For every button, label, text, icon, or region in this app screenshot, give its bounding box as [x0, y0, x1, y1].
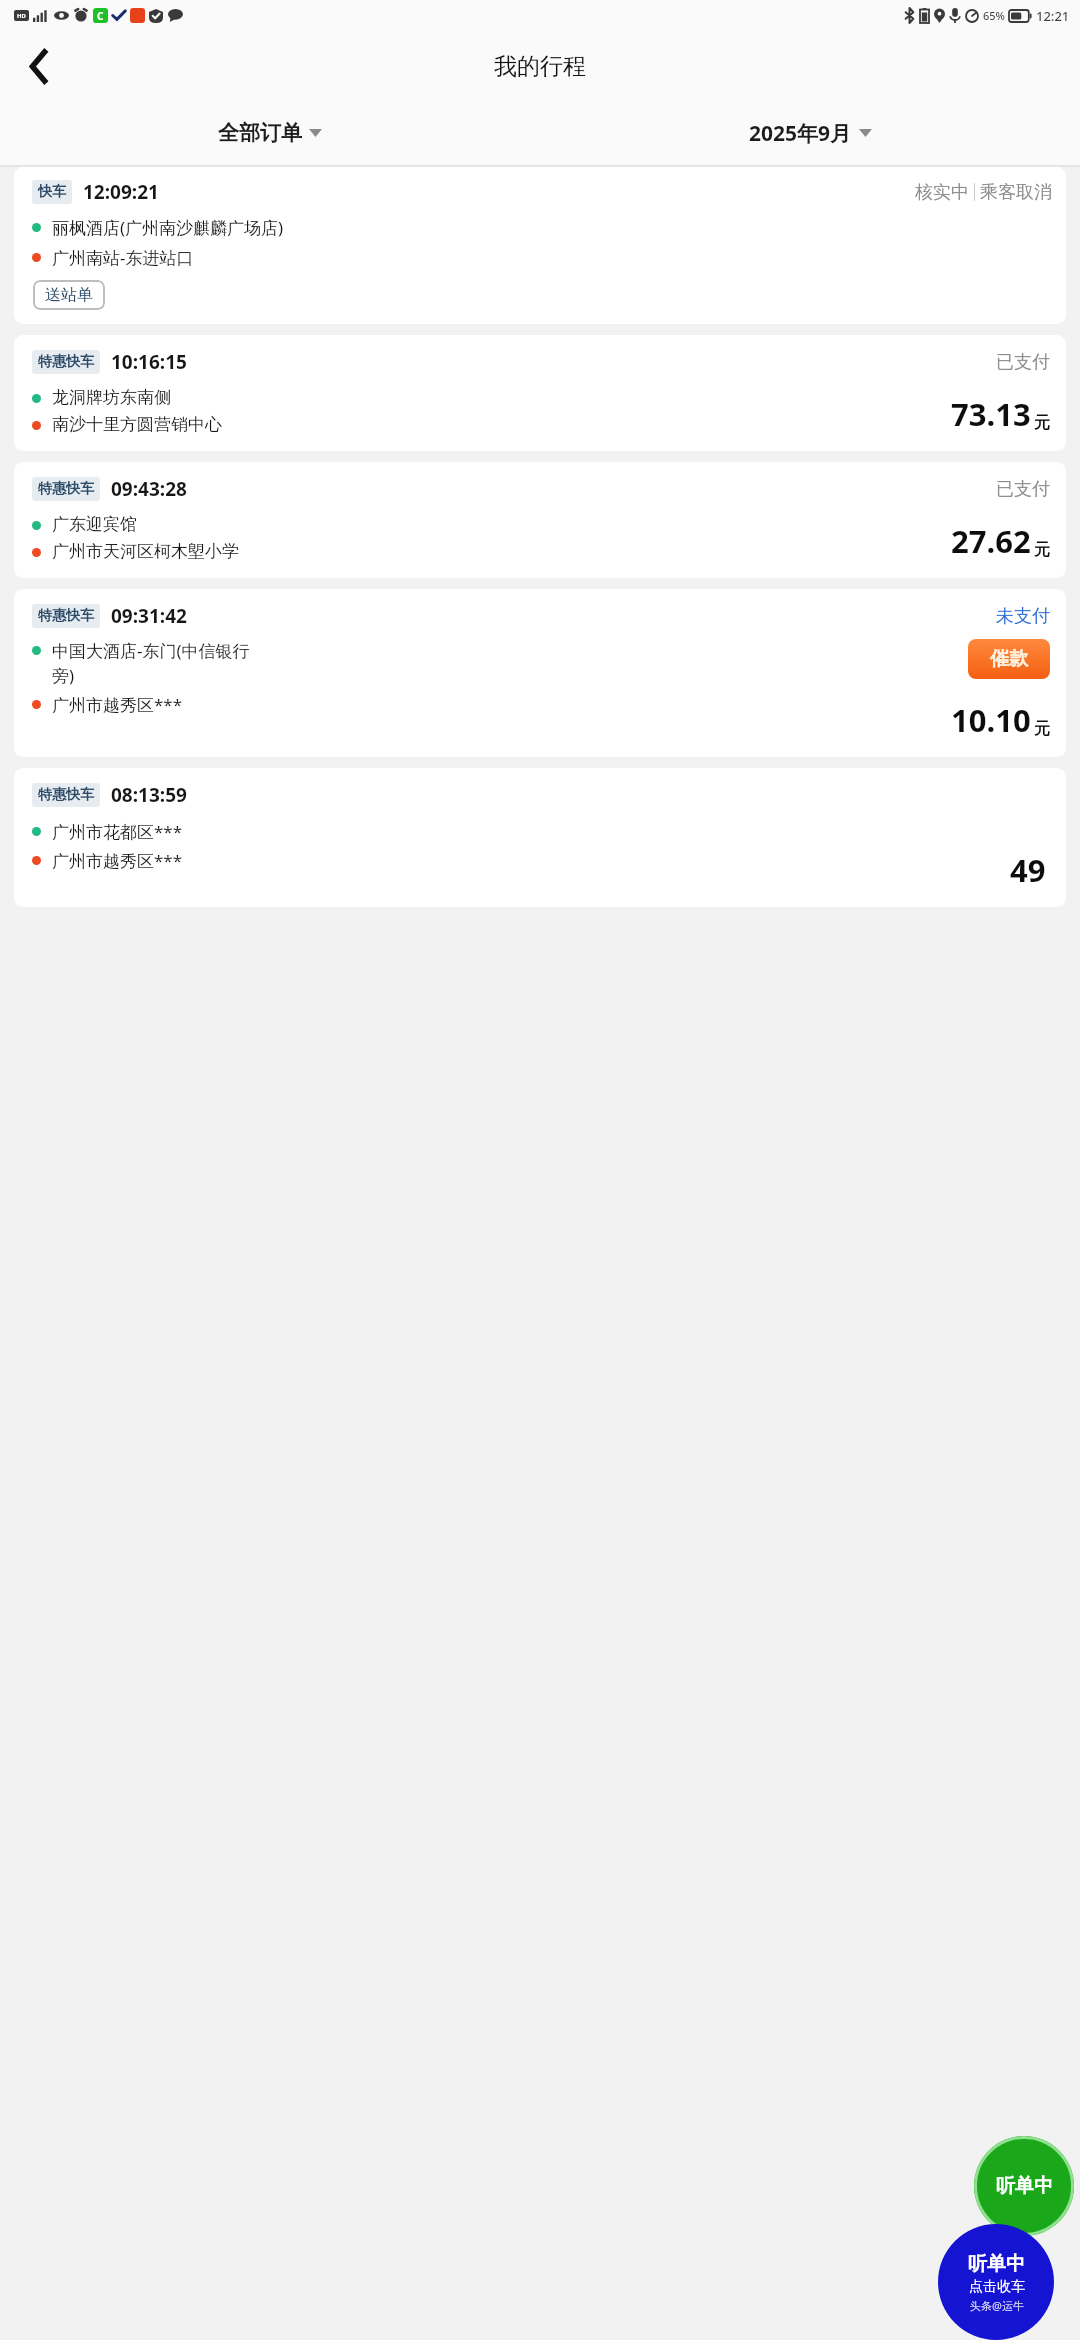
staticText: 核实中	[915, 181, 969, 204]
staticText: 10:16:15	[111, 349, 187, 375]
staticText: 广州市越秀区***	[52, 693, 183, 716]
staticText: HD	[17, 12, 26, 20]
staticText: 头条@运牛	[970, 2298, 1024, 2313]
staticText: 特惠快车	[38, 607, 94, 625]
staticText: C	[97, 9, 104, 23]
staticText: 未支付	[996, 605, 1050, 628]
staticText: 广州市越秀区***	[52, 849, 183, 872]
button[interactable]: 特惠快车	[14, 335, 1066, 451]
staticText: 快车	[38, 183, 66, 201]
staticText: 全部订单	[218, 120, 302, 146]
staticText: 特惠快车	[38, 353, 94, 371]
staticText: 南沙十里方圆营销中心	[52, 414, 222, 435]
staticText: 09:31:42	[111, 603, 187, 629]
staticText: 已支付	[996, 478, 1050, 501]
staticText: 49	[1010, 849, 1046, 891]
button[interactable]: 特惠快车	[14, 589, 1066, 757]
staticText: 特惠快车	[38, 786, 94, 804]
staticText: 2025年9月	[749, 119, 852, 148]
button[interactable]: 特惠快车	[14, 462, 1066, 578]
staticText: 我的行程	[494, 52, 586, 81]
button[interactable]: 全部订单	[0, 101, 540, 165]
staticText: 广州市花都区***	[52, 820, 183, 843]
staticText: 65%	[983, 8, 1005, 23]
staticText: 送站单	[45, 285, 93, 305]
staticText: 已支付	[996, 351, 1050, 374]
button[interactable]: 返回	[12, 40, 64, 92]
staticText: 丽枫酒店(广州南沙麒麟广场店)	[52, 216, 284, 239]
staticText: 12:21	[1036, 7, 1070, 25]
staticText: 听单中	[996, 2174, 1053, 2198]
staticText: 10.10	[951, 699, 1031, 741]
button[interactable]: 快车	[14, 167, 1066, 324]
staticText: 广州市天河区柯木塱小学	[52, 541, 239, 562]
staticText: 特惠快车	[38, 480, 94, 498]
staticText: 点击收车	[969, 2278, 1025, 2296]
staticText: 广州南站-东进站口	[52, 246, 194, 269]
button[interactable]: 听单中	[938, 2224, 1054, 2340]
staticText: 听单中	[968, 2252, 1025, 2276]
button[interactable]: 送站单	[33, 280, 105, 310]
staticText: 广东迎宾馆	[52, 514, 137, 535]
staticText: 27.62	[951, 520, 1031, 562]
staticText: 73.13	[951, 393, 1031, 435]
staticText: 龙洞牌坊东南侧	[52, 387, 171, 408]
staticText: 催款	[990, 647, 1028, 671]
button[interactable]: 听单中	[974, 2136, 1074, 2236]
staticText: 元	[1034, 540, 1050, 560]
staticText: 乘客取消	[980, 181, 1052, 204]
staticText: 09:43:28	[111, 476, 187, 502]
staticText: 中国大酒店-东门(中信银行 旁)	[52, 639, 250, 687]
staticText: 12:09:21	[83, 179, 159, 205]
staticText: 元	[1034, 413, 1050, 433]
button[interactable]: 催款	[968, 639, 1050, 679]
button[interactable]: 2025年9月	[540, 101, 1080, 165]
staticText: 元	[1034, 719, 1050, 739]
staticText: 08:13:59	[111, 782, 187, 808]
button[interactable]: 特惠快车	[14, 768, 1066, 907]
